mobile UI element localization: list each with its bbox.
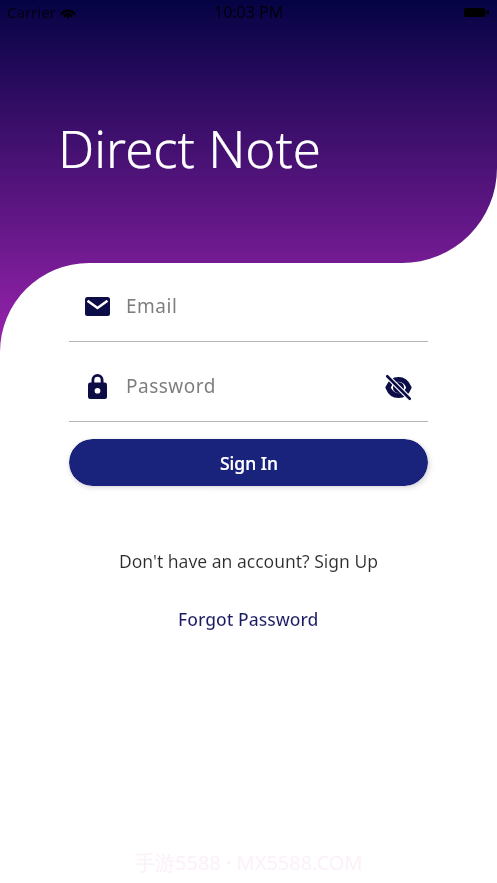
staticText: Email: [126, 293, 178, 319]
button[interactable]: Password: [69, 364, 428, 409]
staticText: Sign In: [220, 451, 278, 475]
button[interactable]: Email: [69, 284, 428, 329]
button[interactable]: Don't have an account? Sign Up: [0, 545, 497, 577]
button[interactable]: Toggle password visibility: [382, 371, 414, 403]
button[interactable]: Forgot Password: [0, 603, 497, 635]
staticText: Password: [126, 373, 216, 399]
button[interactable]: Sign In: [69, 439, 428, 486]
staticText: 手游5588 · MX5588.COM: [135, 849, 363, 876]
staticText: Carrier: [7, 2, 56, 22]
staticText: 10:03 PM: [214, 1, 284, 23]
staticText: Forgot Password: [178, 607, 319, 631]
staticText: Direct Note: [58, 113, 321, 182]
staticText: Don't have an account? Sign Up: [119, 549, 379, 573]
